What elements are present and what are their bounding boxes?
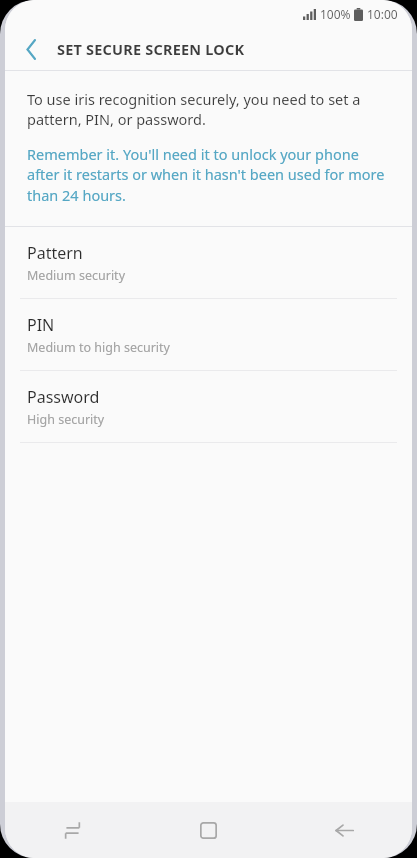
staticText: High security (27, 411, 105, 428)
staticText: 100% (320, 6, 351, 22)
staticText: Pattern (27, 242, 83, 264)
staticText: PIN (27, 314, 55, 336)
staticText: 10:00 (367, 6, 398, 22)
staticText: SET SECURE SCREEN LOCK (57, 39, 245, 59)
staticText: Remember it. You'll need it to unlock yo… (27, 144, 390, 206)
staticText: Medium security (27, 267, 126, 284)
staticText: Password (27, 386, 100, 408)
button[interactable]: Back (13, 31, 49, 67)
button[interactable]: Recents (5, 802, 140, 858)
staticText: To use iris recognition securely, you ne… (27, 89, 390, 130)
button[interactable]: PIN (5, 299, 412, 370)
button[interactable]: Password (5, 371, 412, 442)
button[interactable]: Pattern (5, 227, 412, 298)
staticText: Medium to high security (27, 339, 170, 356)
button[interactable]: Home (140, 802, 276, 858)
button[interactable]: Back (276, 802, 412, 858)
